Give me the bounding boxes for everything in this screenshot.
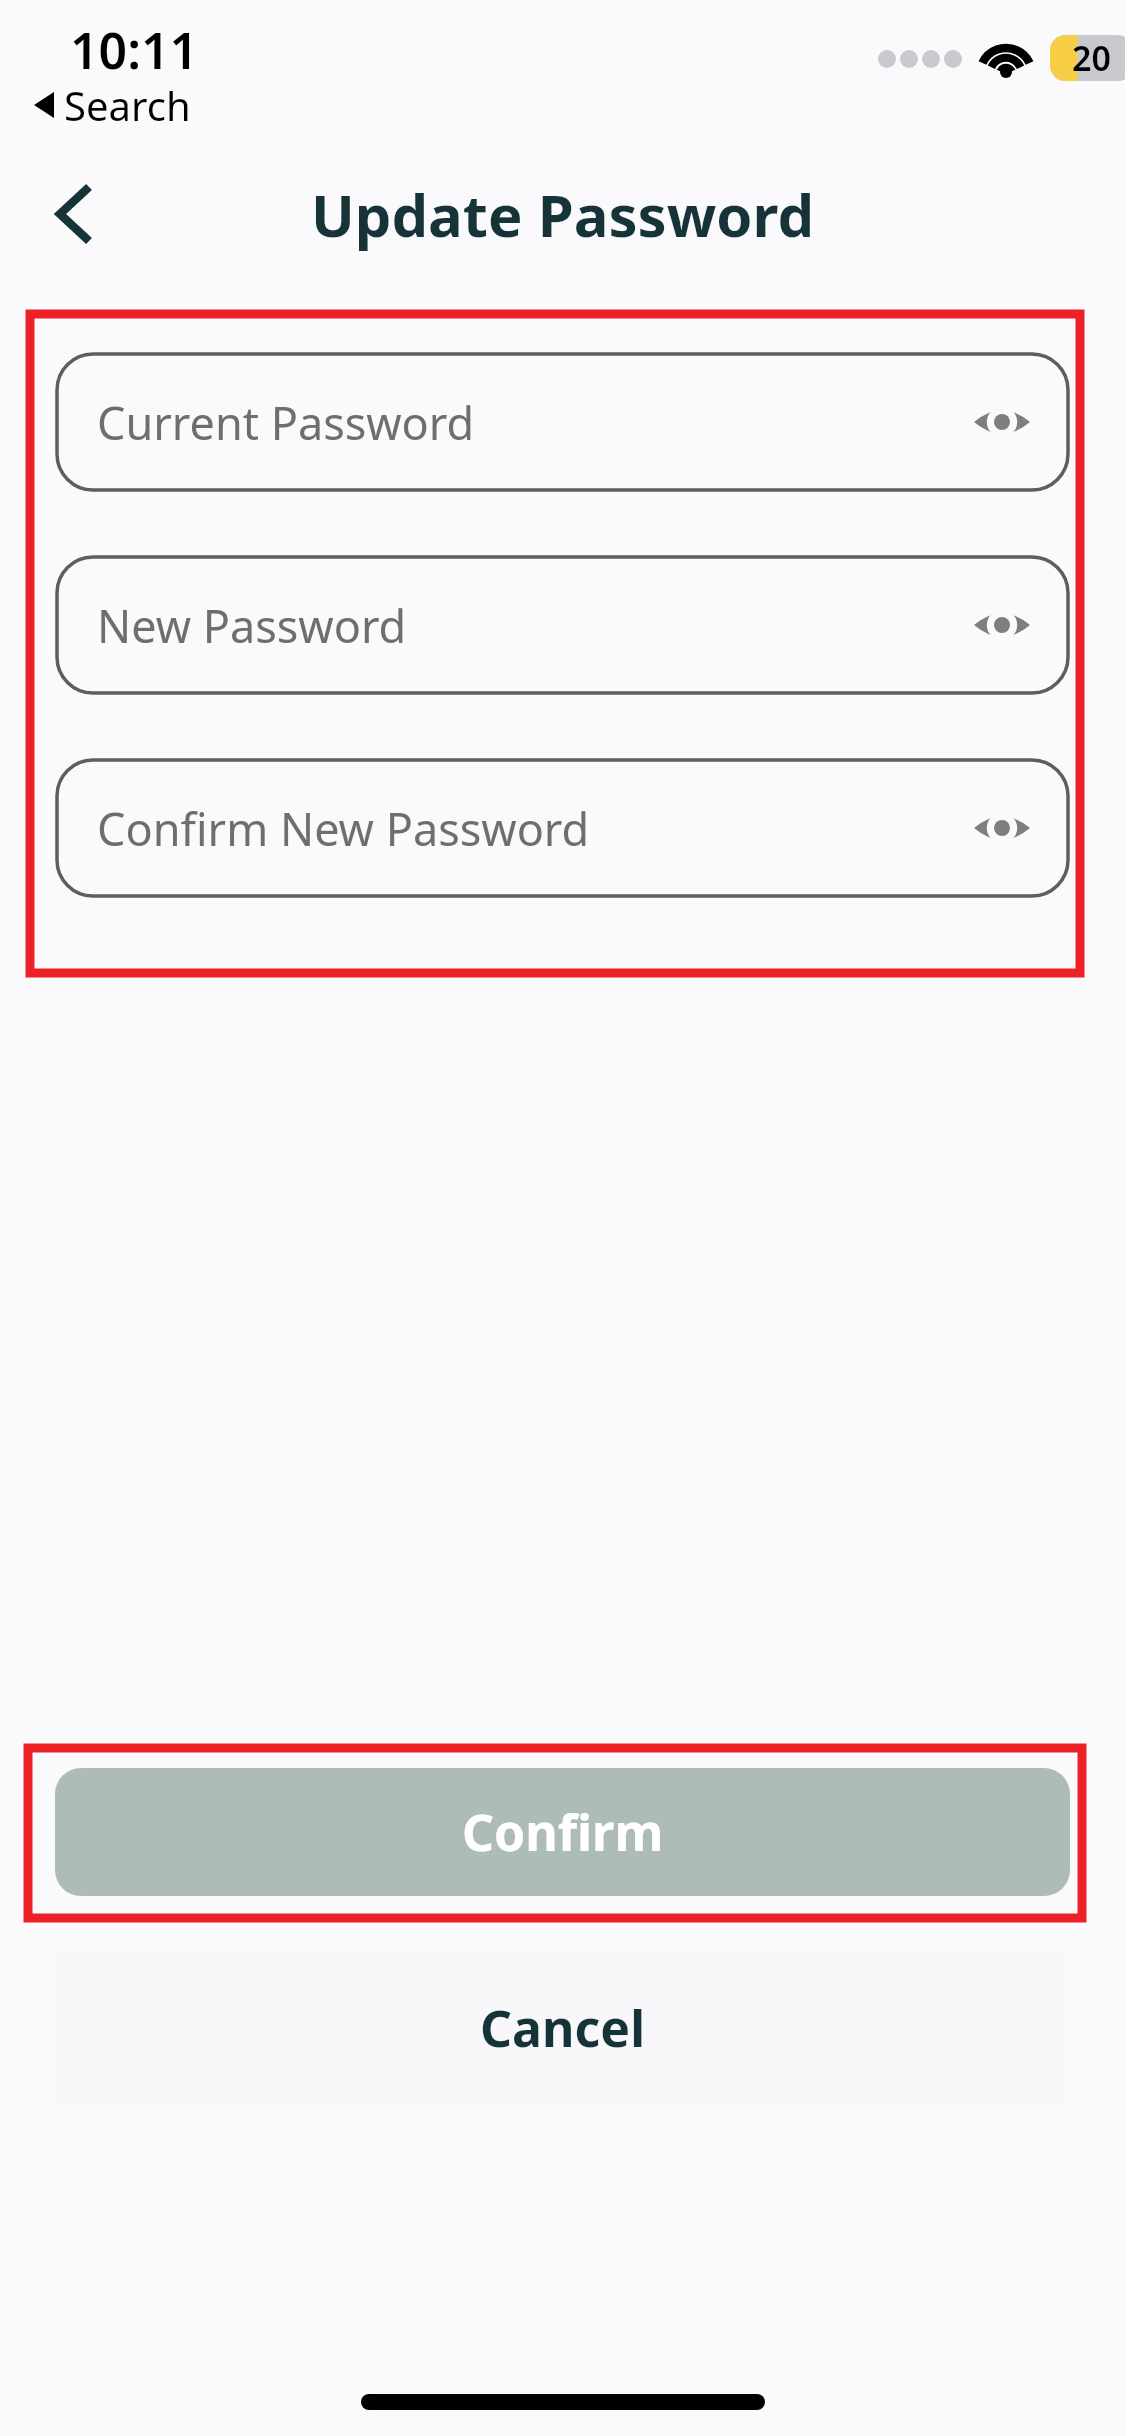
button[interactable]: New Password (55, 555, 1070, 695)
button[interactable]: Confirm New Password (55, 758, 1070, 898)
staticText: Update Password (0, 175, 1125, 254)
button[interactable]: Current Password (55, 352, 1070, 492)
button[interactable]: Search (34, 78, 191, 132)
button[interactable]: Back (18, 158, 130, 270)
button[interactable]: Show password (956, 376, 1048, 468)
staticText: Confirm (462, 1798, 664, 1866)
staticText: Confirm New Password (97, 798, 590, 859)
staticText: Cancel (480, 1994, 646, 2062)
button[interactable]: Show password (956, 782, 1048, 874)
staticText: New Password (97, 595, 407, 656)
staticText: 20 (1072, 35, 1111, 81)
button[interactable]: Cancel (55, 1952, 1070, 2104)
button[interactable]: Show password (956, 579, 1048, 671)
staticText: Search (64, 78, 191, 132)
button[interactable]: Confirm (55, 1768, 1070, 1896)
staticText: Current Password (97, 392, 475, 453)
staticText: 10:11 (70, 16, 199, 78)
